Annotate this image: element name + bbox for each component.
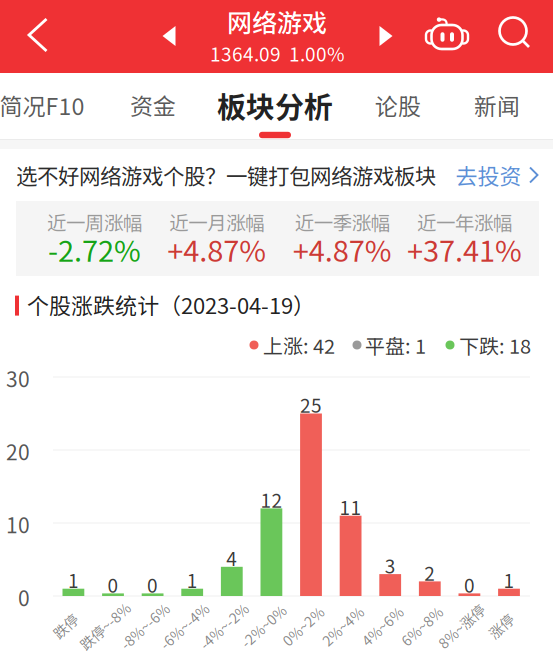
staticText: 0 bbox=[147, 571, 158, 598]
button[interactable]: 板块分析 bbox=[213, 77, 337, 133]
staticText: 20 bbox=[6, 436, 30, 466]
staticText: 板块分析 bbox=[217, 84, 333, 126]
staticText: 选不好网络游戏个股？一键打包网络游戏板块 bbox=[16, 159, 436, 191]
staticText: 下跌: 18 bbox=[459, 330, 531, 359]
staticText: 近一季涨幅 bbox=[295, 208, 390, 236]
staticText: 11 bbox=[340, 493, 362, 520]
staticText: 上涨: 42 bbox=[263, 330, 335, 359]
staticText: 近一周涨幅 bbox=[47, 208, 142, 236]
staticText: +4.87% bbox=[167, 228, 266, 270]
staticText: 新闻 bbox=[474, 88, 520, 122]
staticText: 1 bbox=[503, 566, 514, 593]
staticText: 25 bbox=[300, 391, 322, 418]
staticText: 4%~6% bbox=[357, 616, 407, 636]
staticText: -2%~0% bbox=[236, 616, 291, 636]
staticText: -6%~-4% bbox=[154, 616, 214, 636]
staticText: 简况F10 bbox=[0, 88, 84, 122]
staticText: -8%~-6% bbox=[115, 616, 175, 636]
staticText: 8%~涨停 bbox=[433, 616, 490, 636]
button[interactable]: 搜索 bbox=[489, 4, 545, 66]
staticText: -2.72% bbox=[48, 228, 141, 270]
staticText: 近一月涨幅 bbox=[169, 208, 264, 236]
button[interactable]: 选不好网络游戏个股？一键打包网络游戏板块 bbox=[0, 149, 553, 201]
staticText: 2 bbox=[424, 559, 435, 586]
staticText: 资金 bbox=[130, 88, 176, 122]
staticText: 2%~4% bbox=[318, 616, 368, 636]
staticText: 6%~8% bbox=[397, 616, 447, 636]
staticText: -4%~-2% bbox=[194, 616, 254, 636]
staticText: 论股 bbox=[375, 88, 421, 122]
button[interactable]: 简况F10 bbox=[0, 77, 92, 133]
staticText: 0 bbox=[18, 582, 30, 612]
staticText: 3 bbox=[385, 551, 396, 579]
staticText: 30 bbox=[6, 363, 30, 393]
staticText: 0%~2% bbox=[278, 616, 328, 636]
staticText: 平盘: 1 bbox=[365, 330, 426, 359]
staticText: 1364.09 1.00% bbox=[210, 39, 344, 67]
button[interactable]: 返回 bbox=[8, 0, 68, 71]
staticText: 网络游戏 bbox=[227, 3, 327, 39]
staticText: 个股涨跌统计（2023-04-19） bbox=[27, 289, 315, 320]
staticText: 1 bbox=[68, 566, 79, 593]
staticText: 去投资 bbox=[455, 159, 521, 191]
staticText: 近一年涨幅 bbox=[417, 208, 512, 236]
staticText: +37.41% bbox=[407, 228, 522, 270]
staticText: 0 bbox=[107, 571, 118, 598]
staticText: 4 bbox=[226, 544, 237, 571]
staticText: 0 bbox=[464, 571, 475, 598]
staticText: 12 bbox=[260, 486, 282, 513]
staticText: 涨停 bbox=[487, 616, 515, 636]
button[interactable]: 新闻 bbox=[448, 77, 546, 133]
staticText: 跌停 bbox=[51, 616, 79, 636]
button[interactable]: 下一个 bbox=[364, 9, 408, 63]
staticText: 跌停~-8% bbox=[74, 616, 136, 636]
staticText: +4.87% bbox=[293, 228, 392, 270]
staticText: 10 bbox=[6, 509, 30, 539]
staticText: 1 bbox=[187, 566, 198, 593]
button[interactable]: 上一个 bbox=[147, 9, 191, 63]
button[interactable]: 智能助手 bbox=[419, 5, 475, 67]
button[interactable]: 论股 bbox=[349, 77, 447, 133]
button[interactable]: 资金 bbox=[104, 77, 202, 133]
